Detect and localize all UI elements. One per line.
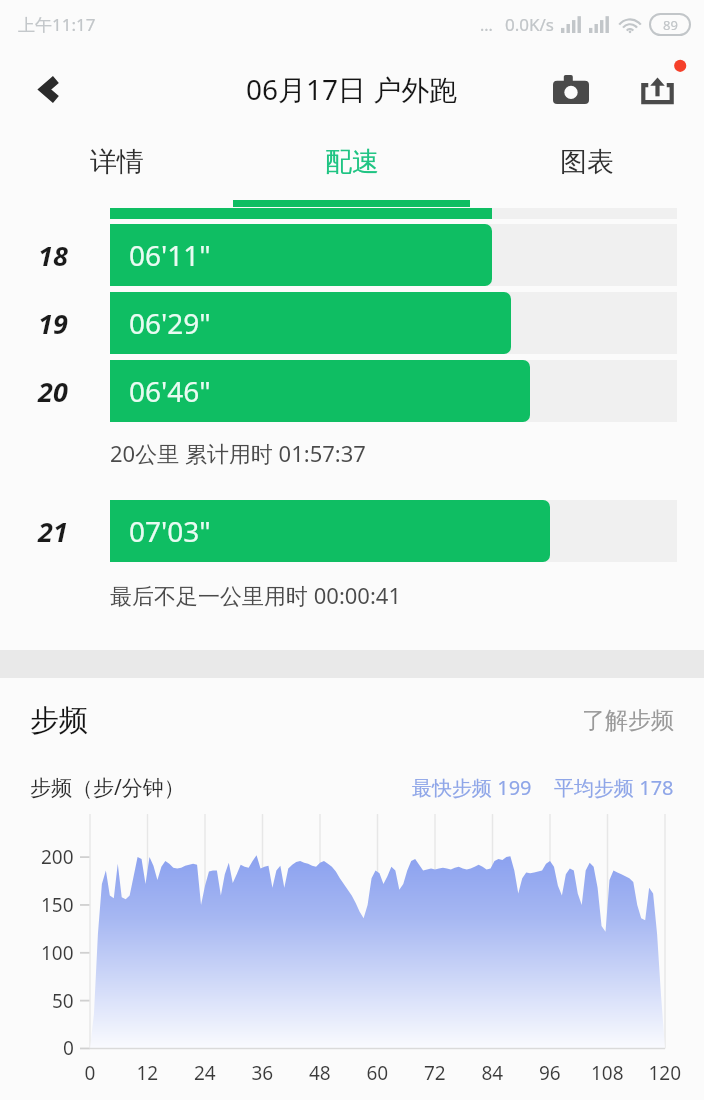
staticText: 06月17日 户外跑 [246, 70, 458, 108]
staticText: 图表 [560, 145, 614, 179]
button[interactable]: 18 [0, 224, 704, 286]
button[interactable]: Back [22, 61, 78, 117]
button[interactable]: 21 [0, 500, 704, 562]
staticText: 步频 [30, 702, 88, 739]
button[interactable]: Camera [542, 60, 600, 118]
button[interactable]: 了解步频 [582, 706, 674, 735]
staticText: 20公里 累计用时 01:57:37 [110, 438, 366, 468]
button[interactable]: 20 [0, 360, 704, 422]
staticText: ... [480, 14, 493, 36]
button[interactable]: 图表 [469, 130, 704, 208]
staticText: 上午11:17 [18, 13, 96, 36]
staticText: 89 [663, 16, 678, 34]
staticText: 06'46" [129, 372, 211, 410]
staticText: 06'11" [129, 236, 211, 274]
staticText: 最后不足一公里用时 00:00:41 [110, 580, 402, 610]
staticText: 步频（步/分钟） [30, 773, 185, 802]
button[interactable]: 详情 [0, 130, 234, 208]
staticText: 最快步频 199 [412, 774, 532, 801]
staticText: 18 [38, 237, 110, 274]
staticText: 20 [38, 373, 110, 410]
staticText: 配速 [325, 145, 379, 179]
button[interactable]: 19 [0, 292, 704, 354]
staticText: 0.0K/s [505, 13, 554, 36]
staticText: 06'29" [129, 304, 211, 342]
staticText: 了解步频 [582, 706, 674, 735]
staticText: 07'03" [129, 512, 211, 550]
staticText: 21 [38, 513, 110, 550]
staticText: 详情 [90, 145, 144, 179]
staticText: 19 [38, 305, 110, 342]
button[interactable]: Share [628, 60, 686, 118]
staticText: 平均步频 178 [554, 774, 674, 801]
button[interactable]: 配速 [234, 130, 469, 208]
